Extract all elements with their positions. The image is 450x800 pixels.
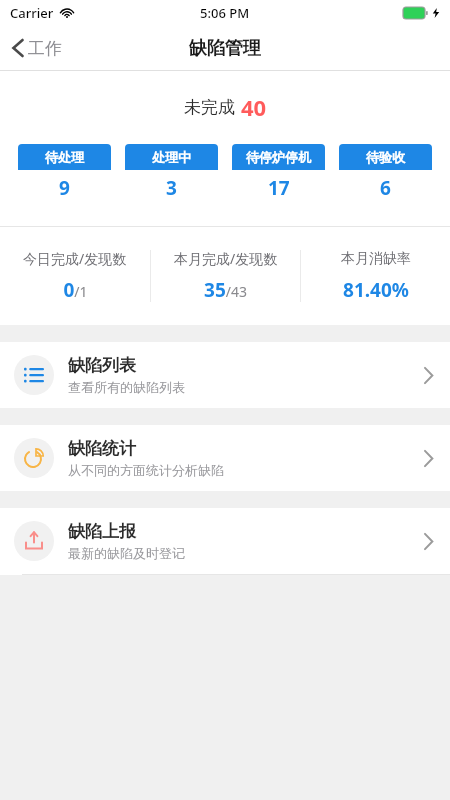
button[interactable]: 待停炉停机: [232, 144, 325, 206]
button[interactable]: Defect statistics: [0, 425, 450, 491]
staticText: 3: [166, 175, 177, 201]
staticText: 9: [59, 175, 70, 201]
staticText: 缺陷管理: [189, 37, 261, 60]
button[interactable]: 待验收: [339, 144, 432, 206]
staticText: 81.40%: [343, 277, 409, 303]
staticText: 今日完成/发现数: [23, 249, 127, 268]
staticText: 35/43: [204, 277, 247, 303]
staticText: 处理中: [152, 149, 191, 165]
staticText: 未完成: [184, 97, 235, 118]
staticText: 工作: [28, 38, 62, 59]
staticText: Carrier: [10, 4, 54, 22]
staticText: 从不同的方面统计分析缺陷: [68, 462, 224, 478]
staticText: 待验收: [366, 149, 405, 165]
button[interactable]: Defect list: [0, 342, 450, 408]
staticText: 本月完成/发现数: [174, 249, 278, 268]
staticText: 缺陷列表: [68, 355, 136, 376]
staticText: 0/1: [63, 277, 88, 303]
staticText: 40: [241, 92, 267, 122]
staticText: 17: [268, 175, 290, 201]
staticText: 5:06 PM: [200, 4, 250, 22]
staticText: 待停炉停机: [246, 149, 311, 165]
button[interactable]: 处理中: [125, 144, 218, 206]
staticText: 缺陷上报: [68, 521, 136, 542]
button[interactable]: 待处理: [18, 144, 111, 206]
staticText: 6: [380, 175, 391, 201]
staticText: 查看所有的缺陷列表: [68, 379, 185, 395]
button[interactable]: Report defect: [0, 508, 450, 574]
staticText: 本月消缺率: [341, 250, 411, 268]
staticText: 待处理: [45, 149, 84, 165]
staticText: 最新的缺陷及时登记: [68, 545, 185, 561]
button[interactable]: 工作: [0, 26, 74, 70]
staticText: 缺陷统计: [68, 438, 136, 459]
